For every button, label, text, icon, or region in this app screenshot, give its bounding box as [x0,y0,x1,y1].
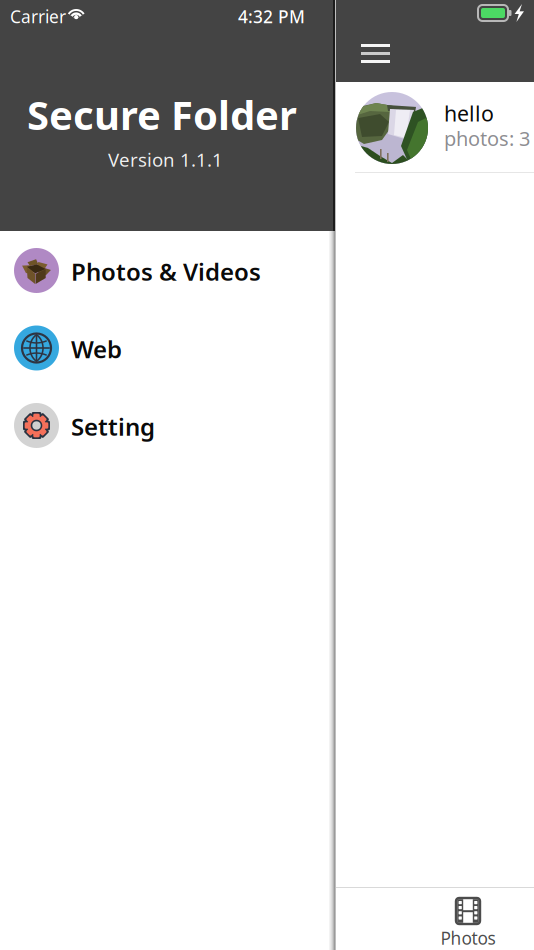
button[interactable]: hello [336,82,534,173]
staticText: Photos [440,926,495,949]
button[interactable]: Photos & Videos [0,232,335,309]
staticText: Version 1.1.1 [108,147,223,172]
staticText: Carrier [10,5,66,28]
staticText: Web [71,333,122,365]
button[interactable]: Setting [0,387,335,464]
button[interactable]: Menu [349,32,402,75]
button[interactable]: Photos [336,888,534,950]
staticText: 4:32 PM [238,5,305,28]
staticText: Secure Folder [27,88,297,141]
button[interactable]: Web [0,309,335,387]
staticText: Photos & Videos [71,255,261,287]
staticText: photos: 3 [444,125,530,152]
staticText: hello [444,99,494,127]
staticText: Setting [71,410,155,442]
